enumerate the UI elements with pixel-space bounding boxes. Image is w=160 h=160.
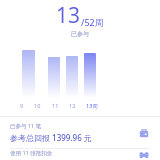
staticText: 参考总回报 1399.96 元 — [10, 132, 92, 143]
staticText: 13周 — [86, 102, 98, 110]
staticText: 已参与 — [71, 30, 89, 38]
staticText: 9 — [20, 102, 24, 109]
staticText: 已参与 11 笔 — [10, 122, 42, 130]
button[interactable]: 查看总回报详情 — [136, 125, 152, 141]
staticText: 使用 11 张抵扣金 — [10, 149, 53, 157]
staticText: 12 — [69, 102, 76, 109]
staticText: 13 — [56, 1, 81, 30]
staticText: 10 — [34, 102, 41, 109]
button[interactable]: 使用 11 张抵扣金 — [0, 149, 160, 160]
staticText: /52周 — [81, 16, 104, 28]
staticText: 11 — [52, 102, 59, 109]
button[interactable]: 已参与 11 笔 — [0, 117, 160, 148]
button[interactable]: 查看抵扣金详情 — [136, 149, 152, 160]
